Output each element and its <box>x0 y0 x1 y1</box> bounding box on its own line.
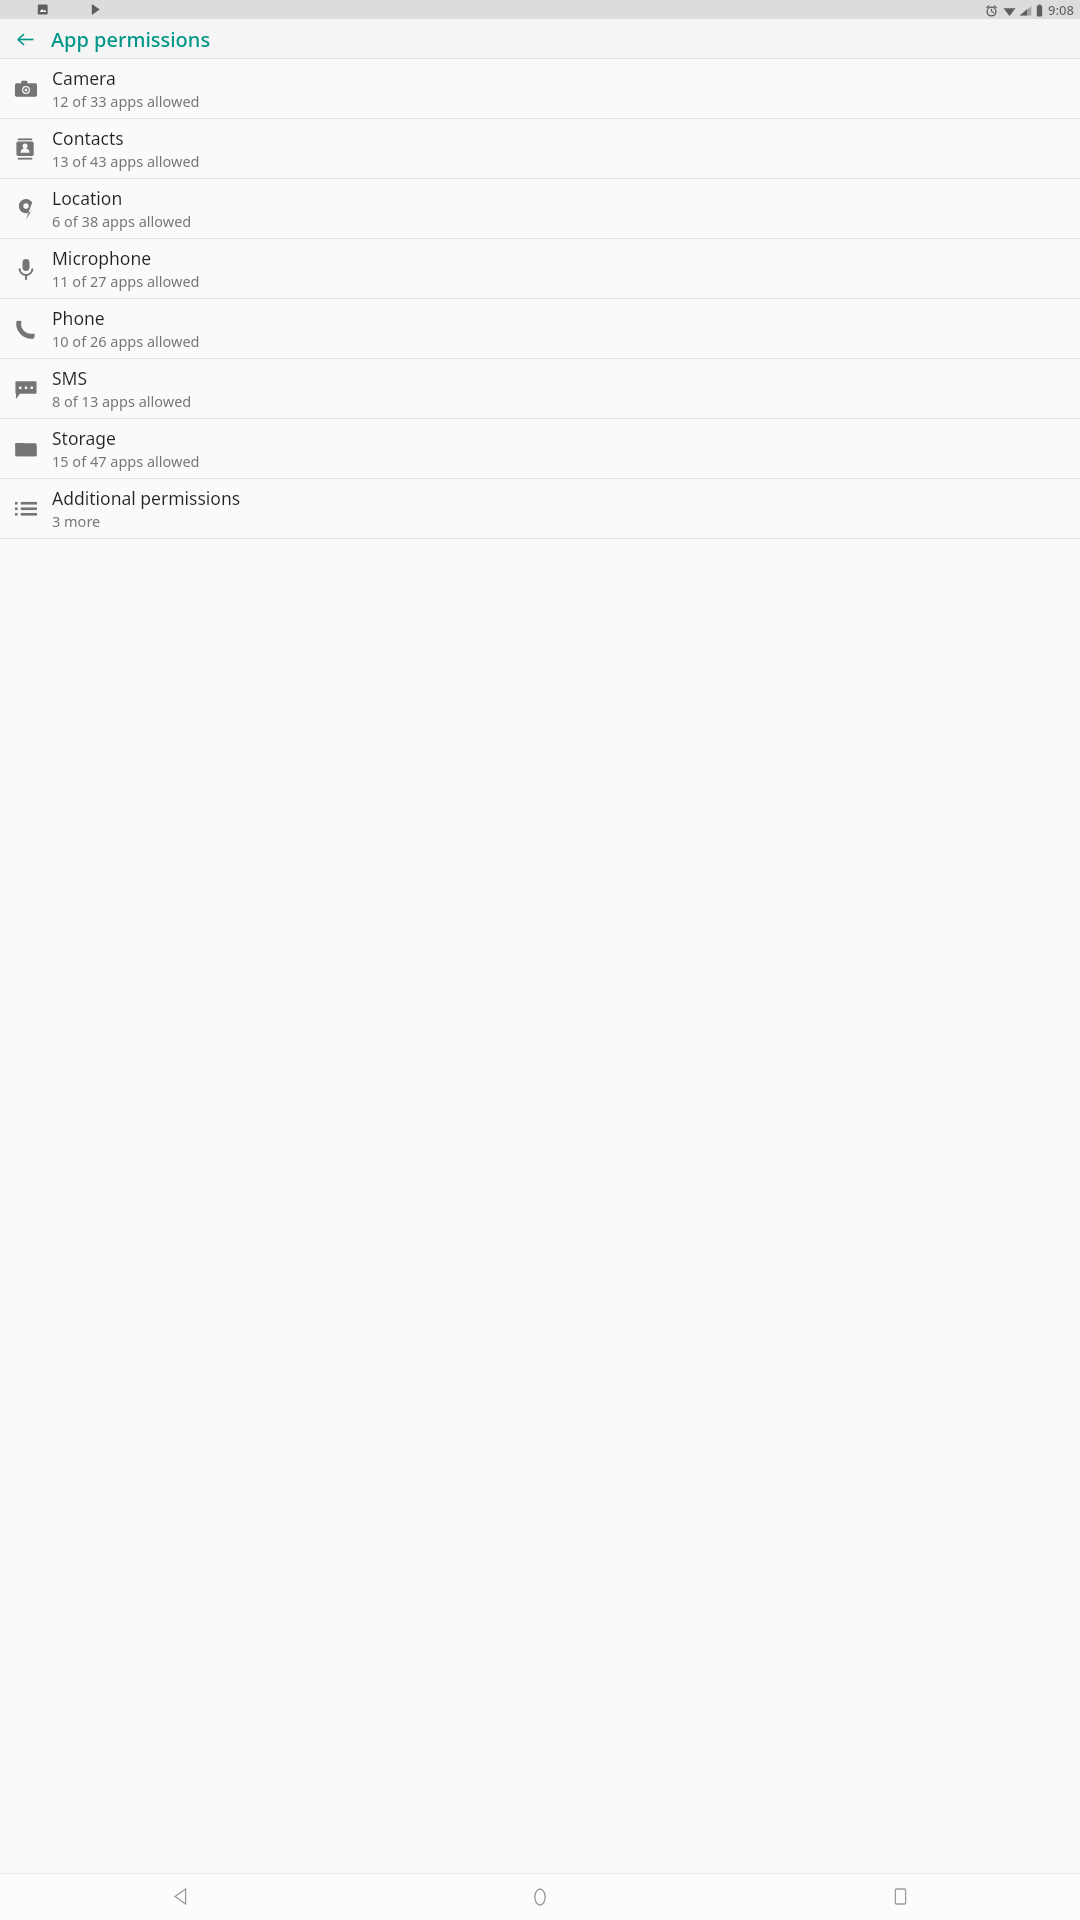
staticText: 9:08 <box>1048 1 1074 19</box>
staticText: 12 of 33 apps allowed <box>52 91 200 111</box>
staticText: 11 of 27 apps allowed <box>52 271 200 291</box>
staticText: 6 of 38 apps allowed <box>52 211 192 231</box>
button[interactable]: Storage <box>0 419 1080 478</box>
staticText: Phone <box>52 306 105 330</box>
staticText: 8 of 13 apps allowed <box>52 391 192 411</box>
button[interactable]: Location <box>0 179 1080 238</box>
button[interactable]: Additional permissions <box>0 479 1080 538</box>
staticText: Camera <box>52 66 116 90</box>
staticText: 10 of 26 apps allowed <box>52 331 200 351</box>
button[interactable]: Back <box>156 1873 204 1920</box>
staticText: Contacts <box>52 126 124 150</box>
button[interactable]: Home <box>516 1873 564 1920</box>
staticText: App permissions <box>51 26 211 53</box>
staticText: SMS <box>52 366 88 390</box>
staticText: Additional permissions <box>52 486 241 510</box>
button[interactable]: Phone <box>0 299 1080 358</box>
staticText: 15 of 47 apps allowed <box>52 451 200 471</box>
staticText: 3 more <box>52 511 101 531</box>
button[interactable]: Contacts <box>0 119 1080 178</box>
button[interactable]: Microphone <box>0 239 1080 298</box>
staticText: 13 of 43 apps allowed <box>52 151 200 171</box>
staticText: Microphone <box>52 246 152 270</box>
staticText: Location <box>52 186 123 210</box>
staticText: Storage <box>52 426 116 450</box>
button[interactable]: SMS <box>0 359 1080 418</box>
button[interactable]: Camera <box>0 59 1080 118</box>
button[interactable]: Recent apps <box>876 1873 924 1920</box>
button[interactable]: Back <box>5 19 45 59</box>
